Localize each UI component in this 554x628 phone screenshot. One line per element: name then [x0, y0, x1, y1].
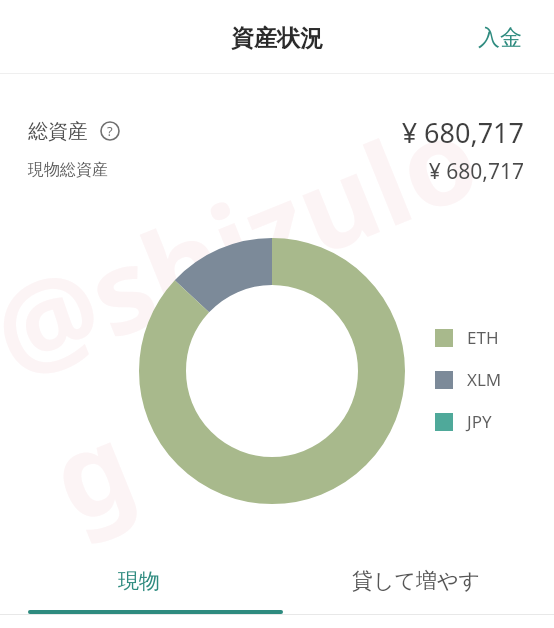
staticText: 現物総資産 — [28, 160, 108, 180]
staticText: @shizulog — [0, 58, 554, 556]
staticText: 資産状況 — [0, 24, 554, 53]
staticText: XLM — [467, 368, 502, 391]
staticText: 貸して増やす — [352, 568, 480, 594]
button[interactable]: ヘルプ — [100, 121, 120, 141]
button[interactable]: 貸して増やす — [277, 550, 554, 616]
button[interactable]: 現物 — [0, 550, 277, 616]
staticText: 総資産 — [28, 119, 88, 144]
staticText: ¥ 680,717 — [0, 114, 524, 151]
staticText: JPY — [467, 410, 492, 433]
staticText: 入金 — [478, 24, 522, 52]
staticText: ¥ 680,717 — [0, 157, 524, 186]
staticText: ETH — [467, 326, 499, 349]
button[interactable]: 入金 — [466, 10, 534, 66]
staticText: ? — [107, 122, 113, 140]
staticText: 現物 — [118, 568, 160, 594]
